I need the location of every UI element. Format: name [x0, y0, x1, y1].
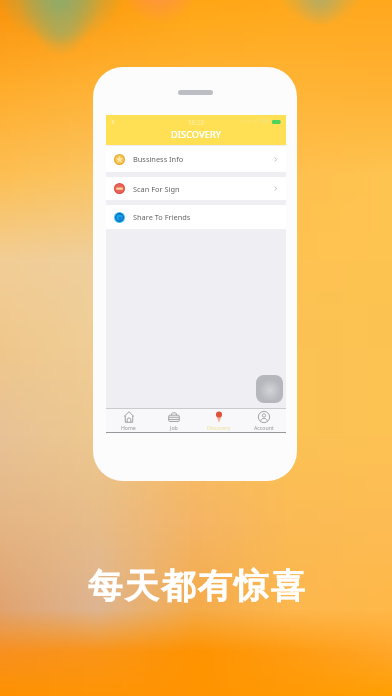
button[interactable]: Compose [256, 375, 283, 403]
staticText: 18:23 [188, 118, 204, 126]
button[interactable]: Share To Friends [106, 205, 286, 229]
staticText: Share To Friends [133, 212, 191, 222]
staticText: Home [121, 424, 136, 431]
staticText: Account [254, 424, 274, 431]
button[interactable]: Home [106, 409, 151, 432]
button[interactable]: Discovery [196, 409, 241, 432]
staticText: Scan For Sign [133, 184, 180, 194]
button[interactable]: Job [151, 409, 196, 432]
button[interactable]: Scan For Sign [106, 177, 286, 200]
button[interactable]: Bussiness Info [106, 146, 286, 172]
staticText: 98% [260, 118, 270, 125]
staticText: Discovery [207, 424, 231, 431]
staticText: Bussiness Info [133, 154, 184, 164]
staticText: 每天都有惊喜 [88, 565, 307, 608]
staticText: Job [170, 424, 178, 431]
button[interactable]: Account [241, 409, 286, 432]
staticText: DISCOVERY [171, 128, 222, 141]
